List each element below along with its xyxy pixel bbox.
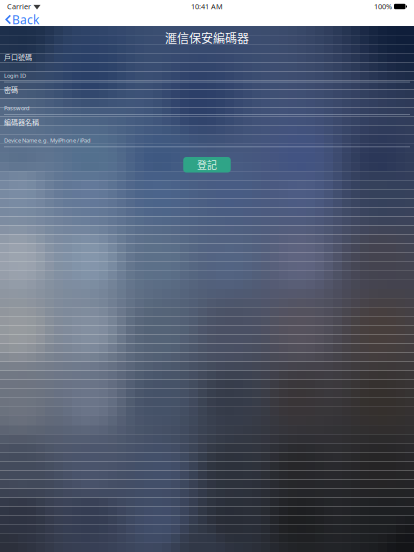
staticText: Back [12, 11, 39, 28]
staticText: 滙信保安編碼器 [165, 29, 249, 46]
staticText: Device Name e.g. MyiPhone / iPad [4, 136, 91, 144]
staticText: 登記 [197, 157, 217, 172]
button[interactable]: 登記 [183, 157, 231, 172]
button[interactable]: Back [0, 13, 47, 26]
staticText: Login ID [4, 72, 26, 79]
staticText: 密碼 [4, 84, 18, 94]
staticText: Password [4, 104, 30, 112]
staticText: 10:41 AM [191, 1, 223, 11]
staticText: 編碼器名稱 [4, 117, 39, 127]
staticText: 100% [374, 1, 392, 11]
staticText: Carrier [7, 1, 31, 11]
staticText: 戶口號碼 [4, 52, 32, 62]
